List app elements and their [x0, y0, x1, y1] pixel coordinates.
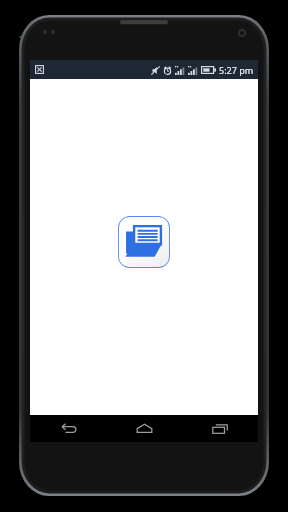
button[interactable]: Recent apps — [182, 415, 258, 442]
button[interactable]: Back — [30, 415, 106, 442]
button[interactable]: File manager app icon — [118, 216, 170, 268]
staticText: 5:27 pm — [219, 64, 254, 76]
button[interactable]: Home — [106, 415, 182, 442]
